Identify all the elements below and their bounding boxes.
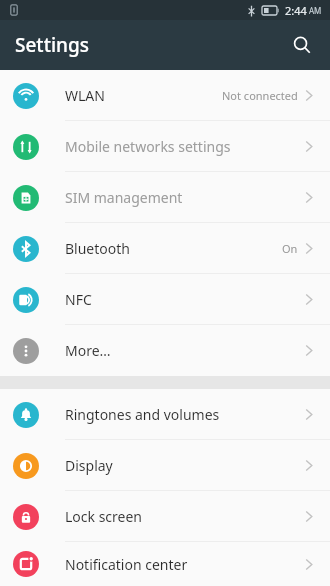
button[interactable]: Search bbox=[282, 25, 322, 65]
staticText: Not connected bbox=[222, 88, 298, 103]
staticText: Display bbox=[65, 456, 113, 475]
staticText: NFC bbox=[65, 290, 92, 309]
button[interactable]: Bluetooth bbox=[0, 223, 330, 274]
staticText: SIM management bbox=[65, 188, 183, 207]
button[interactable]: More… bbox=[0, 325, 330, 376]
staticText: AM bbox=[309, 5, 322, 16]
staticText: Mobile networks settings bbox=[65, 137, 231, 156]
staticText: Lock screen bbox=[65, 507, 143, 526]
button[interactable]: WLAN bbox=[0, 70, 330, 121]
staticText: Notification center bbox=[65, 555, 188, 574]
button[interactable]: SIM management bbox=[0, 172, 330, 223]
staticText: Bluetooth bbox=[65, 239, 130, 258]
button[interactable]: NFC bbox=[0, 274, 330, 325]
button[interactable]: Display bbox=[0, 440, 330, 491]
staticText: 2:44 bbox=[285, 3, 307, 18]
staticText: WLAN bbox=[65, 86, 105, 105]
button[interactable]: Ringtones and volumes bbox=[0, 389, 330, 440]
staticText: Settings bbox=[15, 32, 89, 58]
button[interactable]: Notification center bbox=[0, 542, 330, 586]
staticText: More… bbox=[65, 341, 111, 360]
staticText: On bbox=[282, 241, 298, 256]
button[interactable]: Lock screen bbox=[0, 491, 330, 542]
staticText: Ringtones and volumes bbox=[65, 405, 220, 424]
button[interactable]: Mobile networks settings bbox=[0, 121, 330, 172]
